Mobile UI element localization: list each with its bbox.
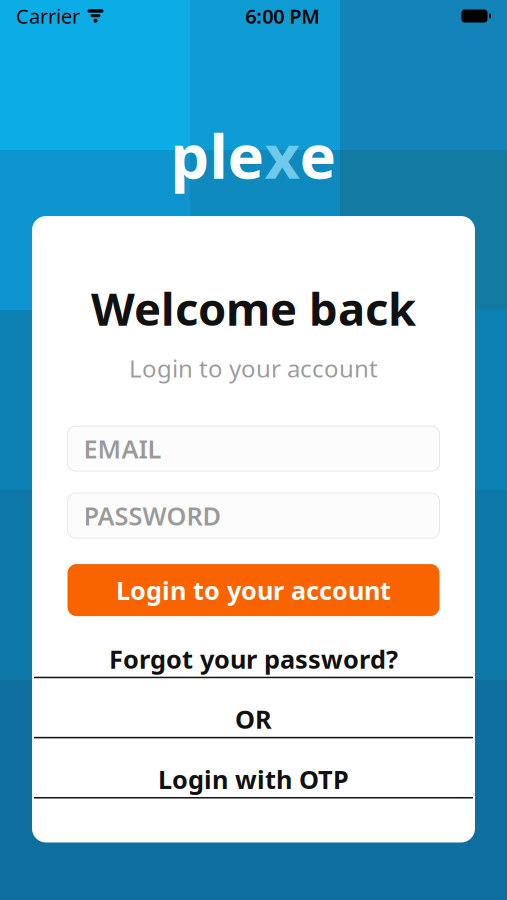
staticText: e: [299, 114, 336, 196]
staticText: PASSWORD: [83, 499, 221, 532]
button[interactable]: Login to your account: [67, 564, 439, 616]
staticText: ple: [170, 114, 264, 196]
button[interactable]: OR: [32, 702, 475, 738]
staticText: Carrier: [16, 3, 80, 29]
staticText: x: [264, 114, 299, 196]
staticText: EMAIL: [83, 432, 161, 465]
button[interactable]: Forgot your password?: [32, 642, 475, 678]
staticText: Login to your account: [116, 573, 391, 607]
staticText: OR: [235, 702, 272, 736]
staticText: 6:00 PM: [245, 3, 320, 29]
staticText: Login to your account: [129, 352, 378, 384]
button[interactable]: Login with OTP: [32, 762, 475, 798]
staticText: Welcome back: [91, 278, 416, 338]
button[interactable]: PASSWORD: [67, 493, 439, 538]
staticText: Forgot your password?: [109, 642, 398, 676]
button[interactable]: EMAIL: [67, 426, 439, 471]
staticText: Login with OTP: [158, 762, 349, 796]
